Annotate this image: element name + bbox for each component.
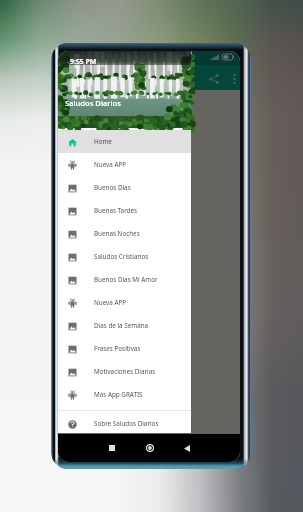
- button[interactable]: Back: [181, 434, 193, 462]
- staticText: Buenos Dias: [94, 183, 131, 192]
- staticText: Buenas Noches: [94, 229, 140, 238]
- staticText: Nueva APP: [94, 160, 127, 169]
- staticText: 9:55 PM: [70, 57, 97, 66]
- staticText: Nueva APP: [94, 298, 127, 307]
- button[interactable]: More options: [226, 71, 240, 87]
- button[interactable]: Buenos Dias: [58, 176, 191, 199]
- button[interactable]: Sobre Saludos Diarios: [58, 414, 191, 433]
- button[interactable]: Nueva APP: [58, 291, 191, 314]
- button[interactable]: Días de la Semana: [58, 314, 191, 337]
- button[interactable]: Recents: [107, 434, 117, 462]
- button[interactable]: Buenos Dias Mi Amor: [58, 268, 191, 291]
- button[interactable]: Saludos Cristianos: [58, 245, 191, 268]
- button[interactable]: Más App GRATIS: [58, 383, 191, 406]
- staticText: Sobre Saludos Diarios: [94, 419, 159, 428]
- button[interactable]: Nueva APP: [58, 153, 191, 176]
- staticText: Saludos Diarios: [65, 98, 121, 108]
- button[interactable]: Home: [144, 434, 156, 462]
- button[interactable]: Motivaciones Diarias: [58, 360, 191, 383]
- staticText: Motivaciones Diarias: [94, 367, 156, 376]
- staticText: Buenas Tardes: [94, 206, 138, 215]
- button[interactable]: Frases Positivas: [58, 337, 191, 360]
- staticText: Días de la Semana: [94, 321, 149, 330]
- button[interactable]: Buenas Noches: [58, 222, 191, 245]
- staticText: Buenos Dias Mi Amor: [94, 275, 158, 284]
- staticText: Saludos Cristianos: [94, 252, 149, 261]
- staticText: Más App GRATIS: [94, 390, 143, 399]
- staticText: Home: [94, 137, 112, 146]
- button[interactable]: Buenas Tardes: [58, 199, 191, 222]
- staticText: Frases Positivas: [94, 344, 141, 353]
- button[interactable]: Share: [206, 71, 222, 87]
- button[interactable]: Home: [58, 130, 191, 153]
